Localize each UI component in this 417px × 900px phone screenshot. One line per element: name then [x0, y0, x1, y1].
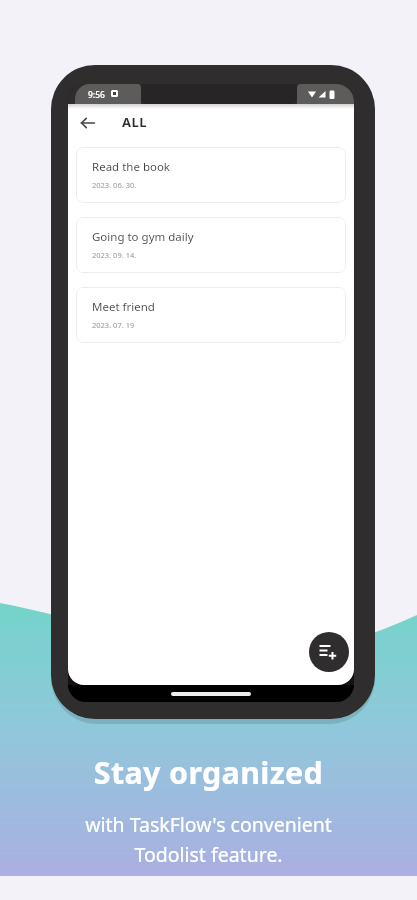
staticText: 9:56 — [88, 89, 105, 101]
staticText: Read the book — [92, 159, 171, 175]
button[interactable]: Going to gym daily — [76, 217, 346, 273]
button[interactable]: Meet friend — [76, 287, 346, 343]
staticText: Meet friend — [92, 299, 155, 315]
staticText: 2023. 07. 19 — [92, 320, 135, 330]
button[interactable] — [81, 118, 95, 128]
staticText: with TaskFlow's convenient Todolist feat… — [0, 811, 417, 867]
staticText: Going to gym daily — [92, 229, 194, 245]
button[interactable] — [309, 632, 349, 672]
button[interactable]: Read the book — [76, 147, 346, 203]
staticText: ALL — [122, 113, 148, 131]
staticText: 2023. 09. 14. — [92, 250, 137, 260]
staticText: Stay organized — [0, 751, 417, 793]
staticText: 2023. 06. 30. — [92, 180, 137, 190]
